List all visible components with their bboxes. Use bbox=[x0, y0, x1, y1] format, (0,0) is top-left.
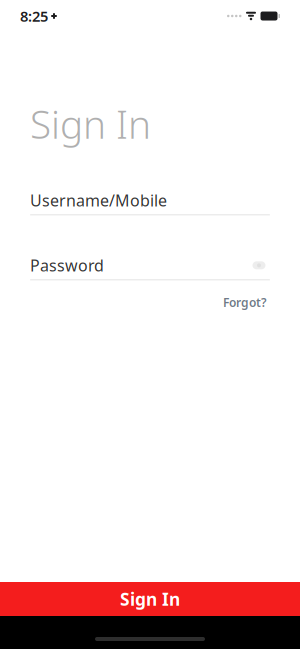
button[interactable]: Forgot? bbox=[220, 290, 270, 314]
staticText: Sign In bbox=[30, 98, 151, 149]
button[interactable]: Sign In bbox=[0, 582, 300, 616]
staticText: 8:25 bbox=[20, 6, 48, 26]
staticText: Username/Mobile bbox=[30, 190, 167, 211]
staticText: Sign In bbox=[120, 587, 180, 610]
staticText: Password bbox=[30, 255, 104, 276]
staticText: Forgot? bbox=[223, 294, 267, 310]
button[interactable]: Show password bbox=[248, 257, 270, 273]
